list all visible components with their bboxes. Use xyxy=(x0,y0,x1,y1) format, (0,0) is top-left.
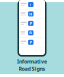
staticText: P xyxy=(30,21,32,26)
staticText: B xyxy=(29,30,32,35)
button[interactable]: P xyxy=(19,19,45,28)
button[interactable]: P xyxy=(19,38,45,47)
staticText: P xyxy=(30,40,32,45)
staticText: i xyxy=(30,2,31,7)
button[interactable]: i xyxy=(19,0,45,9)
staticText: Informative xyxy=(17,58,47,65)
button[interactable]: B xyxy=(19,28,45,37)
button[interactable]: H xyxy=(19,9,45,18)
staticText: Road Signs xyxy=(18,65,45,72)
staticText: H xyxy=(29,11,32,17)
